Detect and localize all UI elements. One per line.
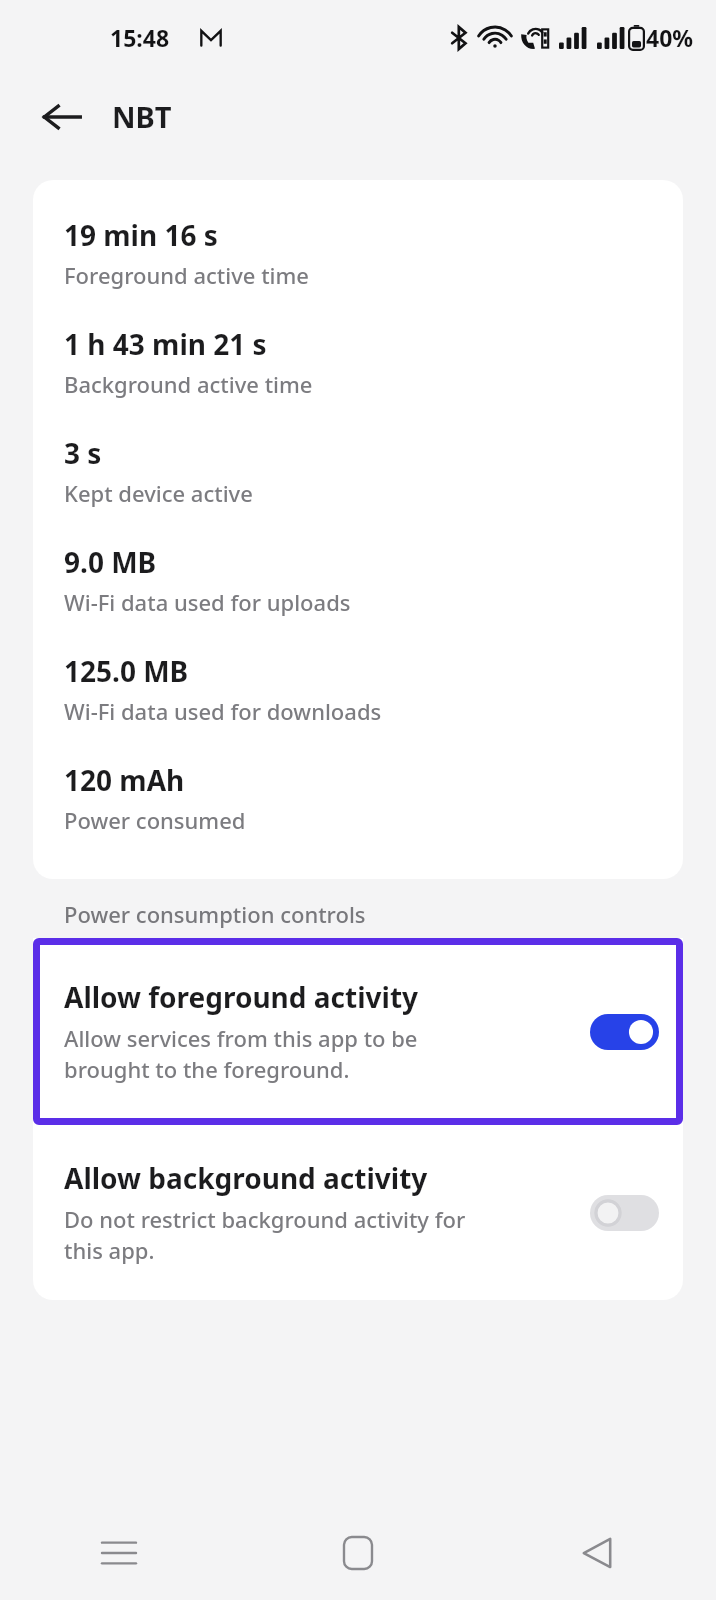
staticText: 1 h 43 min 21 s — [64, 325, 267, 363]
button[interactable]: Toggle off — [590, 1195, 659, 1231]
staticText: Power consumption controls — [64, 899, 366, 929]
staticText: Allow foreground activity — [64, 978, 419, 1016]
button[interactable]: Recent apps — [0, 1505, 238, 1600]
staticText: NBT — [112, 97, 172, 136]
staticText: Wi-Fi data used for downloads — [64, 696, 382, 726]
staticText: 3 s — [64, 434, 102, 472]
button[interactable]: Back — [477, 1505, 716, 1600]
staticText: 120 mAh — [64, 761, 185, 799]
staticText: Power consumed — [64, 805, 246, 835]
staticText: Allow services from this app to be broug… — [64, 1023, 418, 1085]
staticText: 19 min 16 s — [64, 216, 218, 254]
staticText: Kept device active — [64, 478, 253, 508]
button[interactable]: Allow foreground activity — [33, 938, 683, 1125]
staticText: Foreground active time — [64, 260, 309, 290]
button[interactable]: Allow background activity — [33, 1125, 683, 1300]
staticText: 15:48 — [110, 22, 170, 53]
staticText: 40% — [646, 22, 694, 53]
button[interactable]: Home — [238, 1505, 477, 1600]
staticText: Background active time — [64, 369, 313, 399]
staticText: Do not restrict background activity for … — [64, 1204, 466, 1266]
button[interactable]: Toggle on — [590, 1014, 659, 1050]
staticText: Allow background activity — [64, 1159, 428, 1197]
button[interactable]: Back — [30, 85, 94, 149]
staticText: 9.0 MB — [64, 543, 157, 581]
staticText: Wi-Fi data used for uploads — [64, 587, 351, 617]
staticText: 125.0 MB — [64, 652, 189, 690]
